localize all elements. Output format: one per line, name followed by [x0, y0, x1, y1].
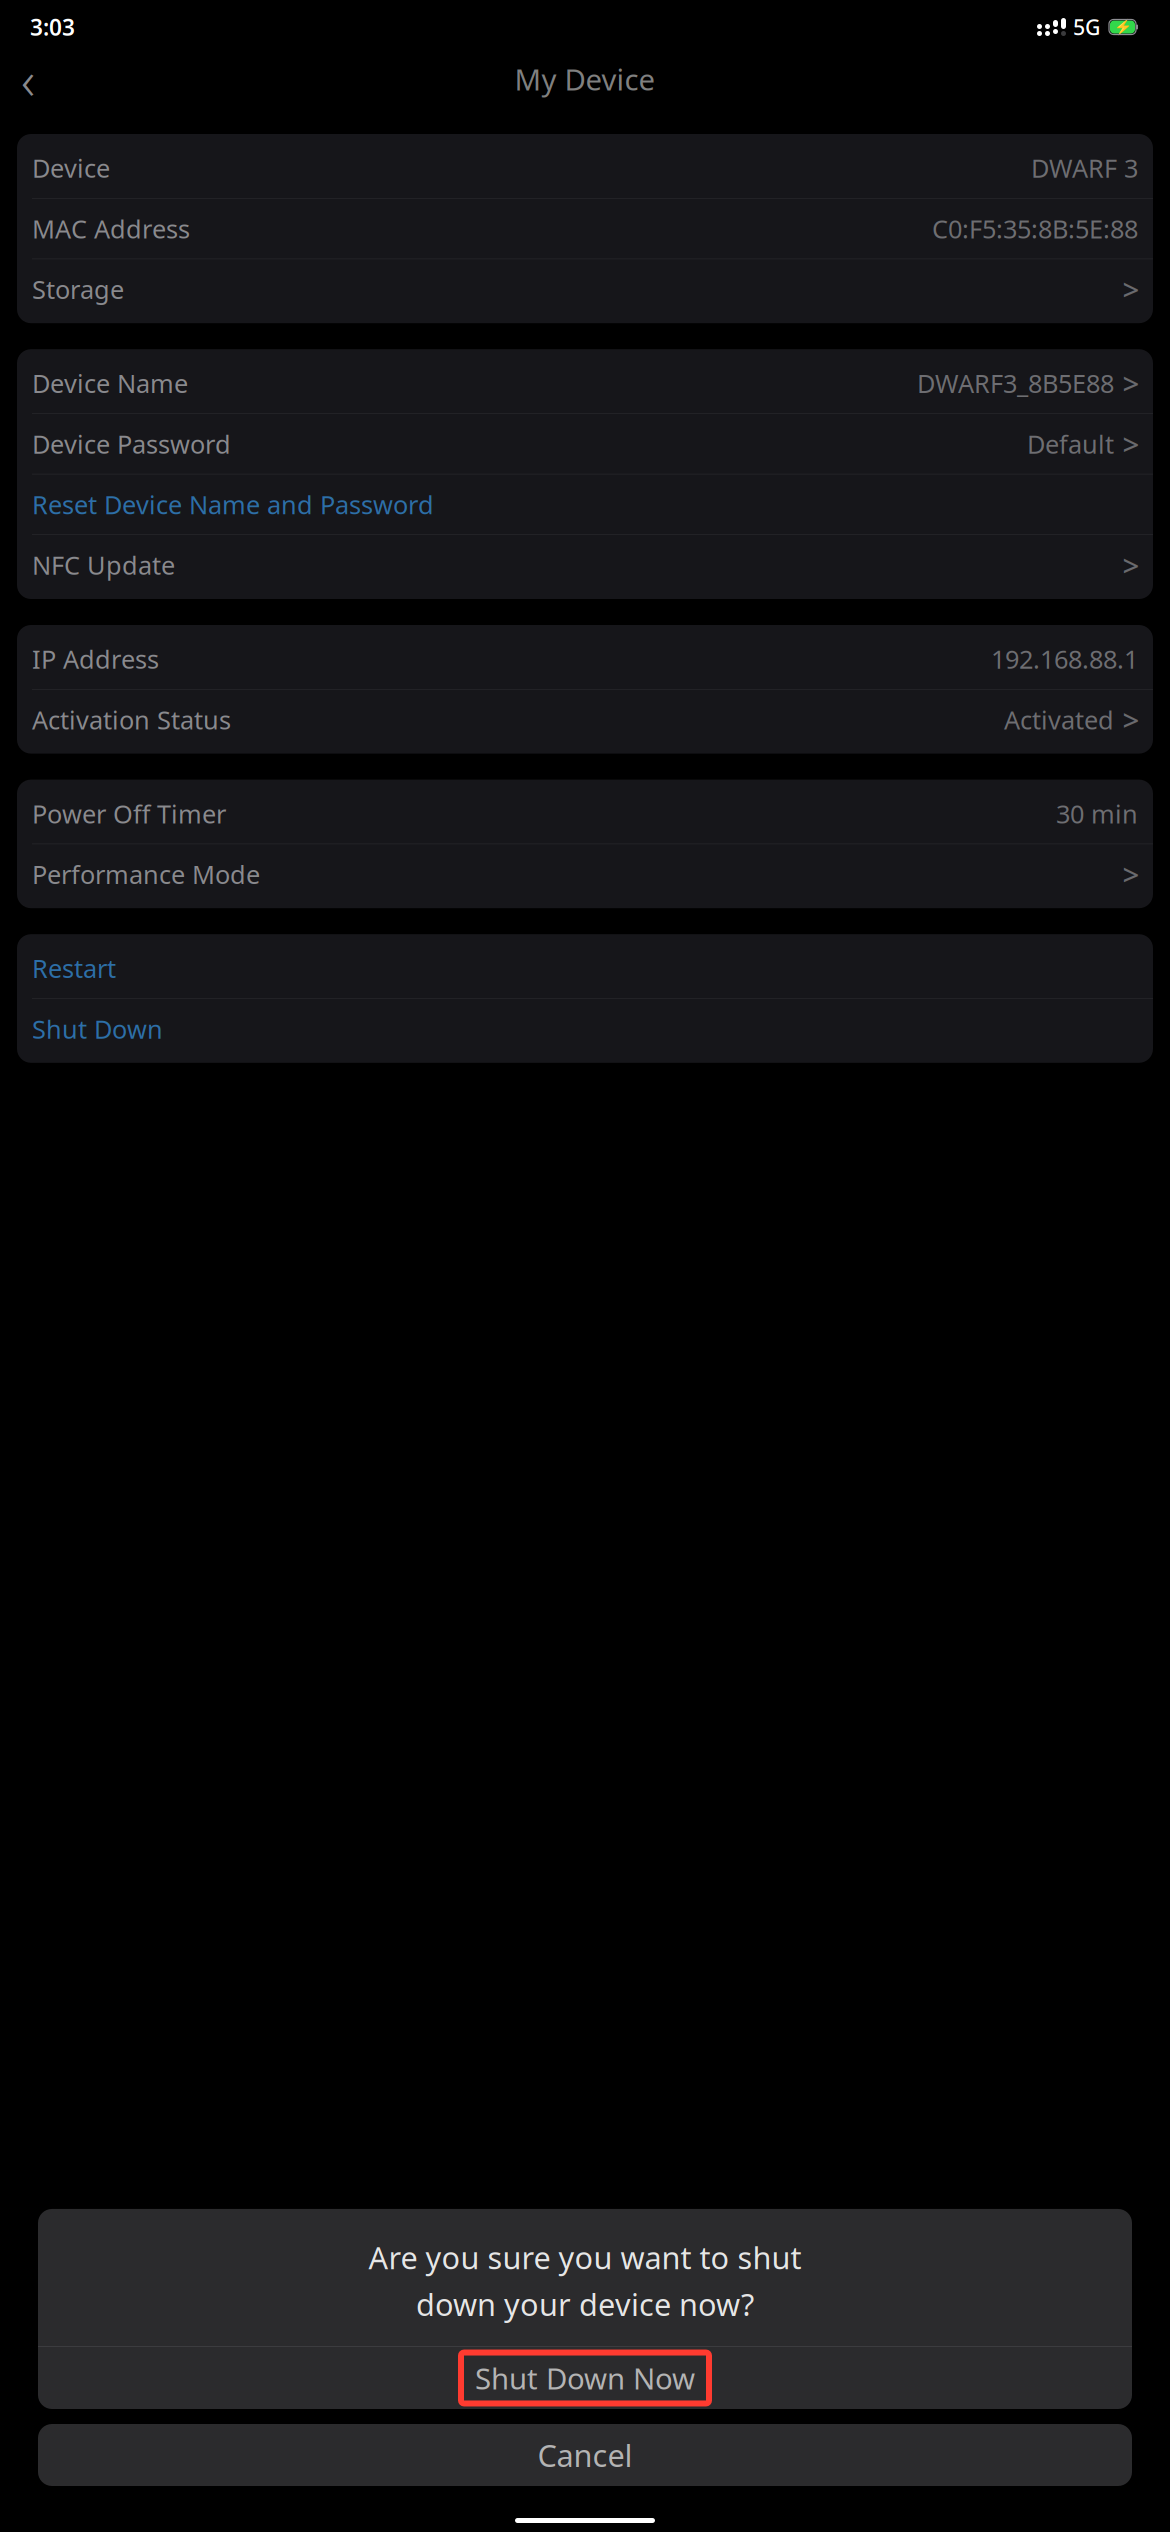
button[interactable]: Performance Mode [17, 844, 1153, 904]
staticText: DWARF3_8B5E88 [917, 366, 1114, 400]
staticText: DWARF 3 [1031, 151, 1138, 185]
staticText: Are you sure you want to shut [368, 2237, 801, 2278]
staticText: Device [32, 151, 110, 185]
staticText: Activated [1004, 703, 1114, 736]
staticText: ⚡ [1113, 19, 1131, 35]
staticText: My Device [514, 59, 655, 98]
staticText: Restart [32, 951, 116, 985]
staticText: Reset Device Name and Password [32, 488, 434, 521]
staticText: > [1122, 545, 1139, 584]
staticText: IP Address [32, 642, 159, 676]
staticText: Storage [32, 272, 124, 306]
button[interactable]: Restart [17, 938, 1153, 998]
button[interactable]: Power Off Timer [17, 784, 1153, 844]
staticText: ‹ [21, 44, 35, 114]
staticText: > [1122, 424, 1139, 463]
button[interactable]: Back [6, 57, 50, 101]
staticText: Shut Down [32, 1012, 163, 1046]
staticText: C0:F5:35:8B:5E:88 [932, 212, 1138, 245]
button[interactable]: MAC Address [17, 199, 1153, 259]
staticText: down your device now? [416, 2284, 754, 2324]
staticText: 30 min [1056, 797, 1138, 830]
staticText: Default [1027, 427, 1114, 461]
staticText: MAC Address [32, 212, 190, 245]
button[interactable]: Shut Down [17, 999, 1153, 1059]
staticText: Power Off Timer [32, 797, 226, 830]
button[interactable]: Shut Down Now [38, 2347, 1132, 2409]
staticText: Device Password [32, 427, 231, 461]
staticText: Cancel [537, 2435, 632, 2475]
staticText: 192.168.88.1 [991, 642, 1138, 676]
staticText: > [1122, 270, 1139, 309]
button[interactable]: IP Address [17, 629, 1153, 689]
button[interactable]: NFC Update [17, 535, 1153, 595]
staticText: Device Name [32, 366, 188, 400]
staticText: Performance Mode [32, 857, 260, 891]
button[interactable]: Storage [17, 259, 1153, 319]
staticText: 5G [1073, 13, 1101, 41]
button[interactable]: Cancel [38, 2424, 1132, 2486]
button[interactable]: Activation Status [17, 690, 1153, 750]
staticText: > [1122, 855, 1139, 894]
button[interactable]: Reset Device Name and Password [17, 474, 1153, 534]
staticText: > [1122, 700, 1139, 739]
button[interactable]: Device Password [17, 414, 1153, 474]
button[interactable]: Device [17, 138, 1153, 198]
staticText: Shut Down Now [475, 2358, 695, 2397]
staticText: Activation Status [32, 703, 231, 736]
staticText: > [1122, 364, 1139, 403]
button[interactable]: Device Name [17, 353, 1153, 413]
staticText: 3:03 [30, 12, 75, 42]
staticText: NFC Update [32, 548, 175, 582]
